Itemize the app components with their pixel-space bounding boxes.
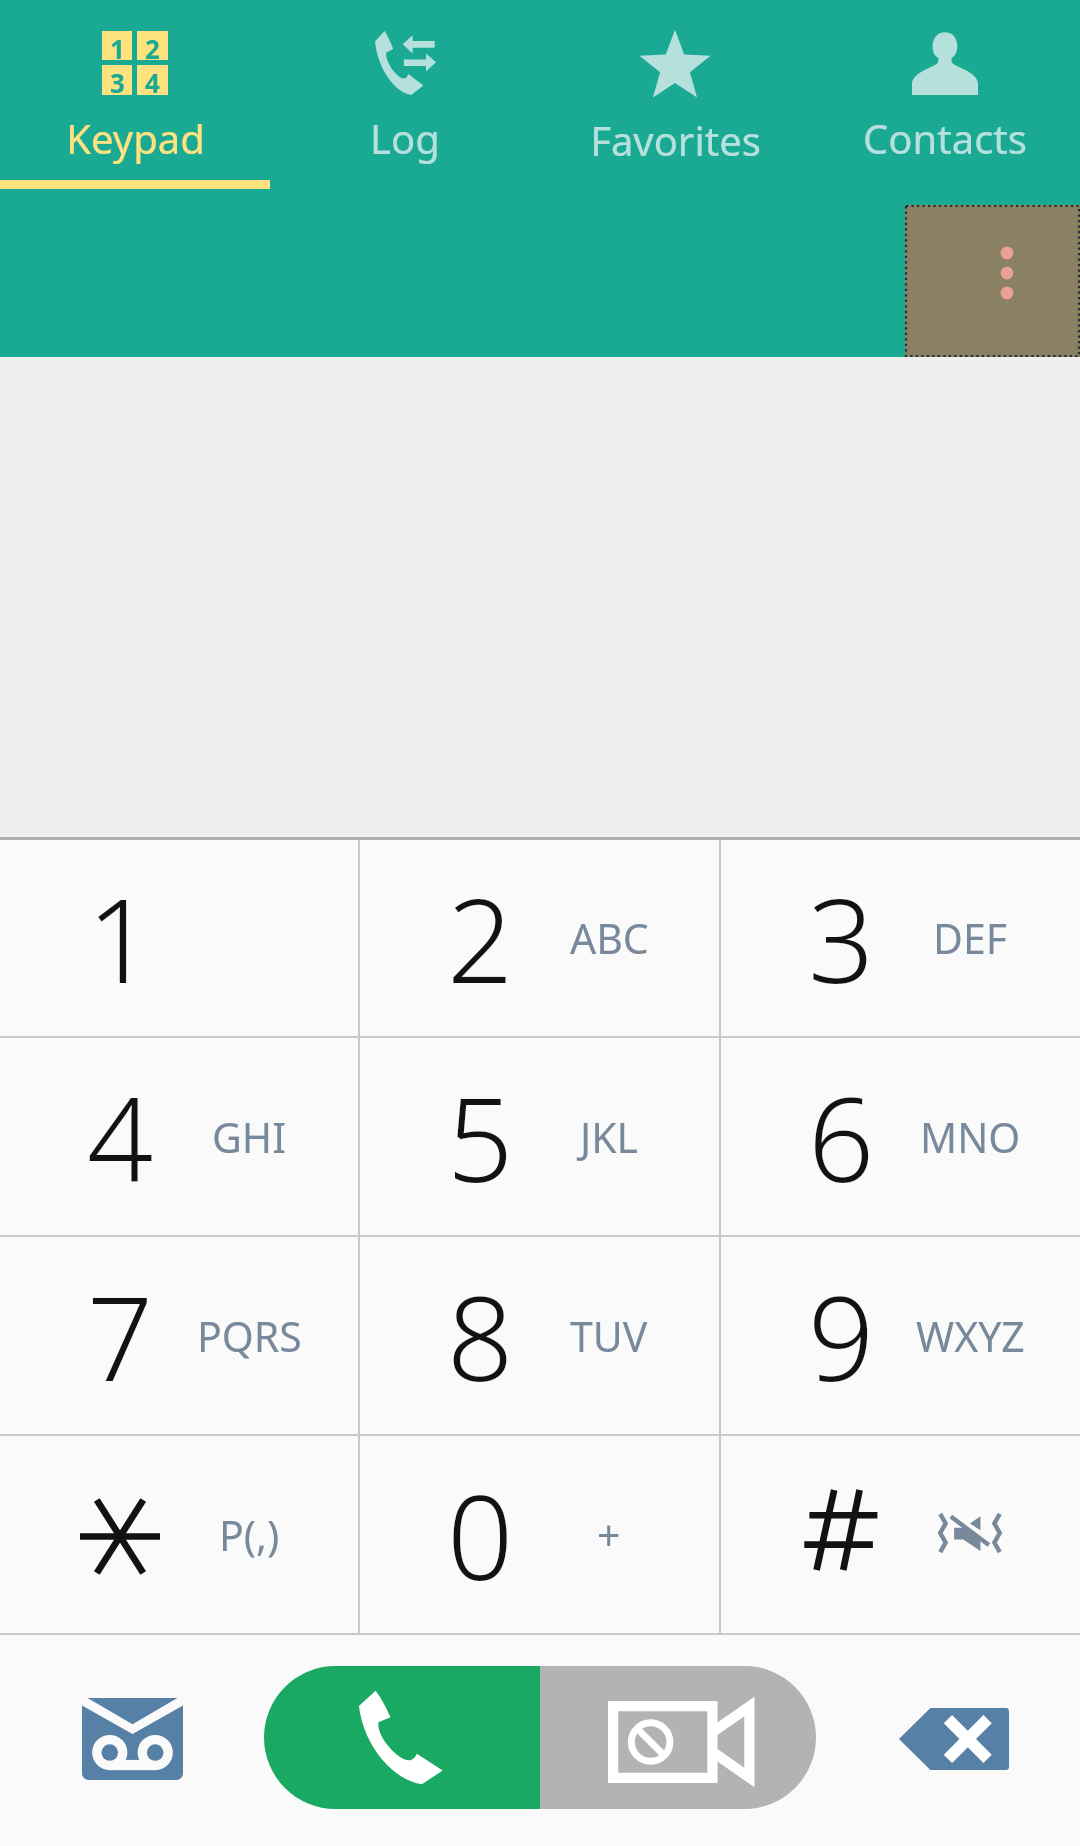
button[interactable]: 8: [360, 1237, 719, 1434]
staticText: +: [597, 1507, 621, 1563]
staticText: 8: [447, 1257, 514, 1415]
staticText: 6: [808, 1058, 875, 1216]
button[interactable]: 6: [721, 1038, 1080, 1235]
staticText: 5: [447, 1058, 514, 1216]
button[interactable]: More options: [905, 205, 1080, 357]
staticText: 2: [145, 31, 160, 60]
staticText: 3: [110, 65, 125, 95]
button[interactable]: Favorites: [540, 0, 810, 189]
button[interactable]: 7: [0, 1237, 358, 1434]
button[interactable]: 1: [0, 840, 358, 1036]
button[interactable]: Log: [270, 0, 540, 189]
button[interactable]: Call: [264, 1666, 540, 1809]
button[interactable]: 0: [360, 1436, 719, 1633]
staticText: JKL: [580, 1109, 639, 1165]
staticText: Keypad: [66, 111, 205, 165]
staticText: 9: [808, 1257, 875, 1415]
button[interactable]: Contacts: [810, 0, 1080, 189]
button[interactable]: 3: [721, 840, 1080, 1036]
staticText: 4: [145, 65, 160, 95]
staticText: Contacts: [863, 111, 1027, 165]
staticText: ABC: [570, 910, 649, 966]
staticText: DEF: [933, 910, 1008, 966]
staticText: Favorites: [590, 113, 761, 167]
staticText: 3: [808, 859, 875, 1017]
button[interactable]: 9: [721, 1237, 1080, 1434]
button[interactable]: P(,): [0, 1436, 358, 1633]
staticText: 4: [87, 1058, 154, 1216]
staticText: GHI: [212, 1109, 287, 1165]
staticText: WXYZ: [916, 1308, 1025, 1364]
button[interactable]: Backspace: [879, 1684, 1029, 1794]
button[interactable]: 5: [360, 1038, 719, 1235]
staticText: Log: [370, 111, 440, 165]
button[interactable]: Voicemail: [56, 1679, 208, 1799]
button[interactable]: Video call: [540, 1666, 816, 1809]
staticText: 2: [447, 859, 514, 1017]
staticText: 1: [87, 859, 154, 1017]
staticText: MNO: [920, 1109, 1021, 1165]
staticText: P(,): [219, 1507, 280, 1563]
staticText: PQRS: [197, 1308, 302, 1364]
button[interactable]: 2: [360, 840, 719, 1036]
staticText: TUV: [570, 1308, 648, 1364]
button[interactable]: 4: [0, 1038, 358, 1235]
button[interactable]: [721, 1436, 1080, 1633]
button[interactable]: 1: [0, 0, 270, 189]
staticText: 1: [110, 31, 125, 60]
staticText: 7: [87, 1257, 154, 1415]
staticText: 0: [447, 1456, 514, 1614]
